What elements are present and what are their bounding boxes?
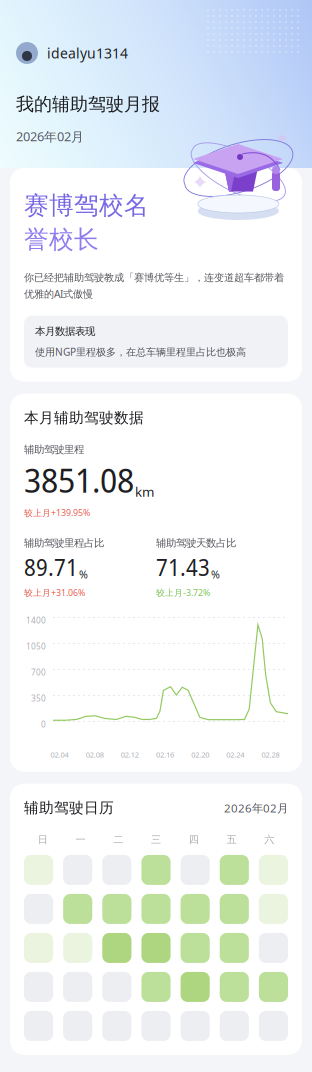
staticText: 辅助驾驶日历 [24, 799, 114, 817]
staticText: 三 [151, 833, 161, 846]
staticText: 较上月-3.72% [156, 587, 210, 599]
staticText: 二 [113, 833, 123, 846]
staticText: 02.12 [121, 749, 139, 760]
staticText: 2026年02月 [16, 128, 84, 145]
staticText: 辅助驾驶天数占比 [156, 537, 236, 550]
staticText: 2026年02月 [224, 800, 288, 816]
staticText: 02.04 [51, 749, 69, 760]
staticText: 02.28 [261, 749, 279, 760]
staticText: 700 [31, 666, 46, 678]
staticText: 使用NGP里程极多，在总车辆里程里占比也极高 [35, 345, 246, 359]
staticText: 89.71 [24, 552, 78, 583]
staticText: idealyu1314 [47, 43, 128, 63]
staticText: 较上月+31.06% [24, 587, 85, 599]
staticText: % [211, 567, 220, 581]
staticText: 350 [31, 692, 46, 704]
staticText: 日 [38, 833, 48, 846]
staticText: 五 [226, 833, 236, 846]
staticText: 本月数据表现 [35, 325, 95, 338]
staticText: 誉校长 [24, 224, 99, 255]
staticText: 02.16 [156, 749, 174, 760]
staticText: 一 [76, 833, 86, 846]
staticText: 0 [41, 718, 46, 730]
staticText: 1400 [26, 614, 46, 626]
staticText: 辅助驾驶里程 [24, 443, 84, 456]
button[interactable]: idealyu1314 [16, 42, 296, 64]
staticText: 3851.08 [24, 457, 134, 503]
staticText: km [135, 482, 154, 501]
staticText: 你已经把辅助驾驶教成「赛博优等生」，连变道超车都带着优雅的AI式傲慢 [24, 271, 284, 301]
staticText: 02.24 [226, 749, 244, 760]
staticText: 较上月+139.95% [24, 507, 90, 519]
staticText: % [79, 567, 88, 581]
staticText: 赛博驾校名 [24, 190, 149, 221]
staticText: 四 [189, 833, 199, 846]
staticText: 71.43 [156, 552, 210, 583]
staticText: 六 [264, 833, 274, 846]
staticText: 辅助驾驶里程占比 [24, 537, 104, 550]
staticText: 本月辅助驾驶数据 [24, 409, 144, 427]
staticText: 1050 [26, 640, 46, 652]
staticText: 我的辅助驾驶月报 [16, 93, 160, 116]
staticText: 02.20 [191, 749, 209, 760]
staticText: 02.08 [86, 749, 104, 760]
